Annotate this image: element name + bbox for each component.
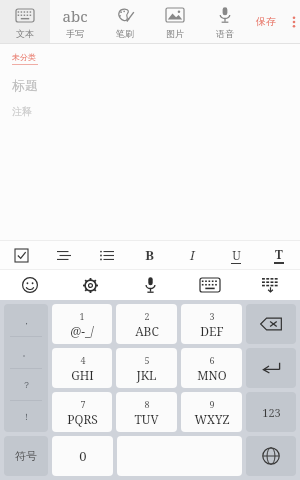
button[interactable]: Switch language	[246, 436, 296, 476]
button[interactable]: Text color	[257, 241, 300, 269]
staticText: abc	[62, 6, 88, 24]
button[interactable]: Bold	[128, 241, 171, 269]
staticText: T	[275, 246, 283, 262]
staticText: 标题	[12, 77, 38, 93]
button[interactable]: Numbered list	[42, 241, 85, 269]
staticText: 保存	[256, 15, 276, 28]
staticText: 0	[79, 447, 87, 465]
staticText: ，	[22, 315, 31, 326]
staticText: TUV	[134, 411, 159, 427]
staticText: 文本	[16, 28, 34, 39]
button[interactable]: 笔刷	[100, 0, 150, 43]
staticText: ！	[22, 411, 31, 422]
button[interactable]: abc	[50, 0, 100, 43]
button[interactable]: 4	[52, 348, 112, 388]
staticText: 7	[80, 398, 86, 410]
button[interactable]: 3	[181, 304, 242, 344]
staticText: 5	[144, 354, 150, 366]
button[interactable]: Enter	[246, 348, 296, 388]
button[interactable]: 未分类	[12, 52, 38, 65]
staticText: B	[145, 246, 154, 264]
staticText: MNO	[197, 367, 227, 383]
button[interactable]: 2	[116, 304, 177, 344]
button[interactable]: 9	[181, 392, 242, 432]
staticText: PQRS	[67, 411, 98, 427]
button[interactable]: Checklist	[0, 241, 42, 269]
staticText: 123	[262, 405, 281, 420]
button[interactable]: 123	[246, 392, 296, 432]
button[interactable]: Voice input	[120, 270, 180, 300]
staticText: WXYZ	[194, 411, 230, 427]
staticText: 手写	[66, 28, 84, 39]
button[interactable]: Underline	[214, 241, 257, 269]
button[interactable]: Delete	[246, 304, 296, 344]
staticText: 1	[79, 310, 85, 322]
button[interactable]: 6	[181, 348, 242, 388]
staticText: 9	[209, 398, 215, 410]
button[interactable]: 7	[52, 392, 112, 432]
button[interactable]: 符号	[4, 436, 48, 476]
button[interactable]: Keyboard	[180, 270, 240, 300]
staticText: 注释	[12, 105, 32, 118]
staticText: 符号	[15, 449, 37, 463]
staticText: 。	[22, 347, 31, 358]
button[interactable]: 语音	[200, 0, 250, 43]
button[interactable]: ！	[4, 401, 48, 432]
staticText: 8	[144, 398, 150, 410]
button[interactable]: Hide keyboard	[240, 270, 300, 300]
staticText: 6	[209, 354, 215, 366]
button[interactable]: Bulleted list	[85, 241, 128, 269]
button[interactable]: Italic	[171, 241, 214, 269]
staticText: 图片	[166, 28, 184, 39]
staticText: @-_/	[70, 323, 94, 339]
staticText: 笔刷	[116, 28, 134, 39]
staticText: ？	[22, 379, 31, 390]
button[interactable]: Emoji	[0, 270, 60, 300]
button[interactable]: Settings	[60, 270, 120, 300]
button[interactable]: 8	[116, 392, 177, 432]
button[interactable]: 0	[52, 436, 113, 476]
staticText: GHI	[71, 367, 94, 383]
staticText: 3	[209, 310, 215, 322]
button[interactable]: 文本	[0, 0, 50, 43]
staticText: ABC	[135, 323, 159, 339]
staticText: DEF	[200, 323, 224, 339]
button[interactable]: 5	[116, 348, 177, 388]
button[interactable]: More options	[288, 11, 300, 33]
staticText: 4	[80, 354, 86, 366]
button[interactable]: 保存	[250, 9, 282, 34]
staticText: 语音	[216, 28, 234, 39]
staticText: 2	[144, 310, 150, 322]
staticText: JKL	[136, 367, 157, 383]
button[interactable]: 1	[52, 304, 112, 344]
staticText: I	[190, 246, 195, 264]
button[interactable]: ？	[4, 369, 48, 400]
button[interactable]: 图片	[150, 0, 200, 43]
staticText: 未分类	[12, 52, 36, 62]
staticText: U	[232, 247, 241, 263]
